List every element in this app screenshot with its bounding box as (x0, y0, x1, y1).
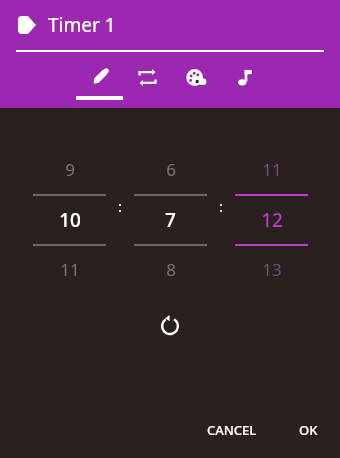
staticText: CANCEL (207, 421, 257, 439)
staticText: 10 (59, 207, 81, 233)
staticText: : (118, 196, 123, 216)
button[interactable]: 11 (235, 156, 308, 282)
staticText: 13 (262, 258, 282, 281)
staticText: : (219, 196, 224, 216)
staticText: 6 (166, 158, 176, 181)
staticText: 7 (165, 207, 176, 233)
button[interactable]: Edit (75, 58, 123, 104)
staticText: 11 (60, 258, 80, 281)
staticText: OK (299, 421, 318, 439)
button[interactable]: Color (171, 58, 219, 104)
button[interactable]: 6 (134, 156, 207, 282)
staticText: 12 (261, 207, 283, 233)
staticText: 8 (166, 258, 176, 281)
button[interactable]: CANCEL (193, 411, 271, 449)
staticText: Timer 1 (48, 12, 116, 38)
button[interactable]: 9 (33, 156, 106, 282)
staticText: 11 (262, 158, 282, 181)
button[interactable]: Label (16, 14, 38, 36)
button[interactable]: Sound (219, 58, 267, 104)
button[interactable]: OK (285, 411, 332, 449)
button[interactable]: Repeat (123, 58, 171, 104)
staticText: 9 (65, 158, 75, 181)
button[interactable]: Reset (153, 308, 187, 342)
